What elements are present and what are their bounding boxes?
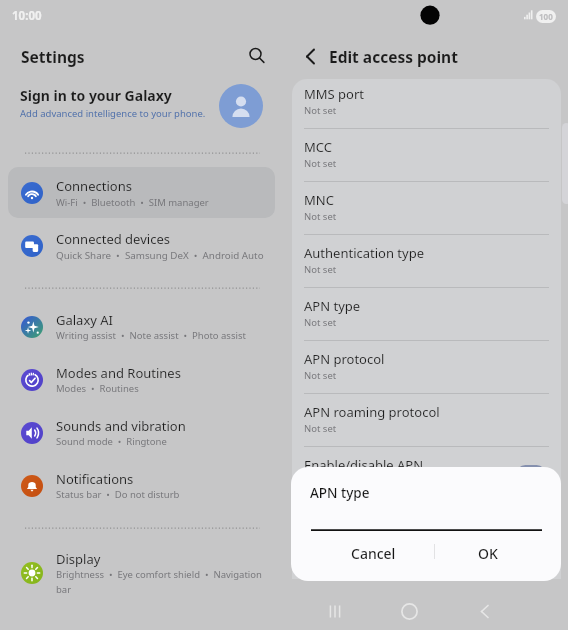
staticText: Enable/disable APN bbox=[304, 456, 424, 474]
button[interactable]: Search bbox=[243, 42, 268, 67]
staticText: Notifications bbox=[56, 470, 134, 488]
button[interactable] bbox=[0, 309, 284, 345]
staticText: MMS port bbox=[304, 85, 365, 103]
staticText: MCC bbox=[304, 138, 332, 156]
button[interactable]: Enable/disable APN bbox=[292, 450, 561, 503]
staticText: Not set bbox=[304, 316, 337, 329]
staticText: APN protocol bbox=[304, 350, 385, 368]
button[interactable]: Back bbox=[468, 592, 502, 630]
staticText: Connected devices bbox=[56, 230, 170, 248]
button[interactable] bbox=[0, 228, 284, 264]
staticText: Brightness • Eye comfort shield • Naviga… bbox=[56, 568, 264, 596]
button[interactable]: Authentication type bbox=[292, 238, 561, 291]
staticText: Add advanced intelligence to your phone. bbox=[20, 107, 206, 120]
button[interactable]: Recents bbox=[320, 592, 354, 630]
staticText: Quick Share • Samsung DeX • Android Auto bbox=[56, 249, 296, 262]
button[interactable]: MMS port bbox=[292, 79, 561, 132]
staticText: 10:00 bbox=[12, 8, 42, 24]
staticText: 100 bbox=[539, 11, 553, 22]
button[interactable] bbox=[0, 468, 284, 504]
staticText: OK bbox=[478, 544, 498, 563]
staticText: Authentication type bbox=[304, 244, 424, 262]
button[interactable]: OK bbox=[436, 537, 540, 569]
staticText: Modes • Routines bbox=[56, 382, 296, 395]
staticText: Not set bbox=[304, 210, 337, 223]
staticText: APN type bbox=[310, 484, 370, 502]
staticText: Display bbox=[56, 550, 101, 568]
button[interactable]: MCC bbox=[292, 132, 561, 185]
staticText: Connections bbox=[56, 177, 132, 195]
button[interactable]: APN roaming protocol bbox=[292, 397, 561, 450]
button[interactable]: APN type bbox=[292, 291, 561, 344]
staticText: Status bar • Do not disturb bbox=[56, 488, 296, 501]
button[interactable]: MNC bbox=[292, 185, 561, 238]
button[interactable]: APN protocol bbox=[292, 344, 561, 397]
button[interactable]: Cancel bbox=[313, 537, 433, 569]
staticText: Modes and Routines bbox=[56, 364, 181, 382]
button[interactable] bbox=[0, 362, 284, 398]
staticText: Not set bbox=[304, 104, 337, 117]
staticText: APN roaming protocol bbox=[304, 403, 440, 421]
button[interactable] bbox=[0, 548, 284, 598]
button[interactable] bbox=[0, 175, 284, 211]
button[interactable] bbox=[0, 415, 284, 451]
staticText: Sounds and vibration bbox=[56, 417, 186, 435]
button[interactable]: Back bbox=[294, 43, 321, 70]
staticText: APN type bbox=[304, 297, 361, 315]
staticText: Writing assist • Note assist • Photo ass… bbox=[56, 329, 296, 342]
staticText: Settings bbox=[21, 46, 85, 67]
staticText: Not set bbox=[304, 263, 337, 276]
button[interactable]: Home bbox=[393, 592, 427, 630]
staticText: Sound mode • Ringtone bbox=[56, 435, 296, 448]
staticText: Cancel bbox=[351, 544, 396, 563]
staticText: MNC bbox=[304, 191, 334, 209]
button[interactable]: Sign in to your Galaxy bbox=[0, 82, 284, 132]
staticText: Edit access point bbox=[329, 46, 458, 67]
staticText: Wi-Fi • Bluetooth • SIM manager bbox=[56, 196, 296, 209]
staticText: Galaxy AI bbox=[56, 311, 114, 329]
staticText: Sign in to your Galaxy bbox=[20, 86, 172, 105]
staticText: Not set bbox=[304, 157, 337, 170]
staticText: Not set bbox=[304, 369, 337, 382]
staticText: Not set bbox=[304, 422, 337, 435]
